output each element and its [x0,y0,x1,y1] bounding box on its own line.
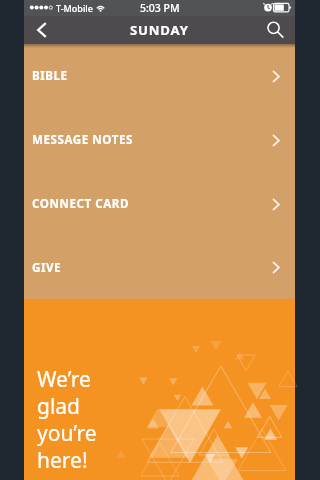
staticText: 5:03 PM [140,1,180,15]
staticText: BIBLE [32,68,272,84]
staticText: T-Mobile [56,2,93,14]
button[interactable]: Search [255,16,295,44]
staticText: MESSAGE NOTES [32,132,272,148]
button[interactable]: BIBLE [24,44,295,108]
button[interactable]: MESSAGE NOTES [24,108,295,172]
button[interactable]: GIVE [24,236,295,299]
staticText: SUNDAY [130,21,189,39]
staticText: GIVE [32,260,272,276]
button[interactable]: Back [24,16,60,44]
button[interactable]: CONNECT CARD [24,172,295,236]
staticText: CONNECT CARD [32,196,272,212]
staticText: We’re glad you’re here! [37,365,97,474]
